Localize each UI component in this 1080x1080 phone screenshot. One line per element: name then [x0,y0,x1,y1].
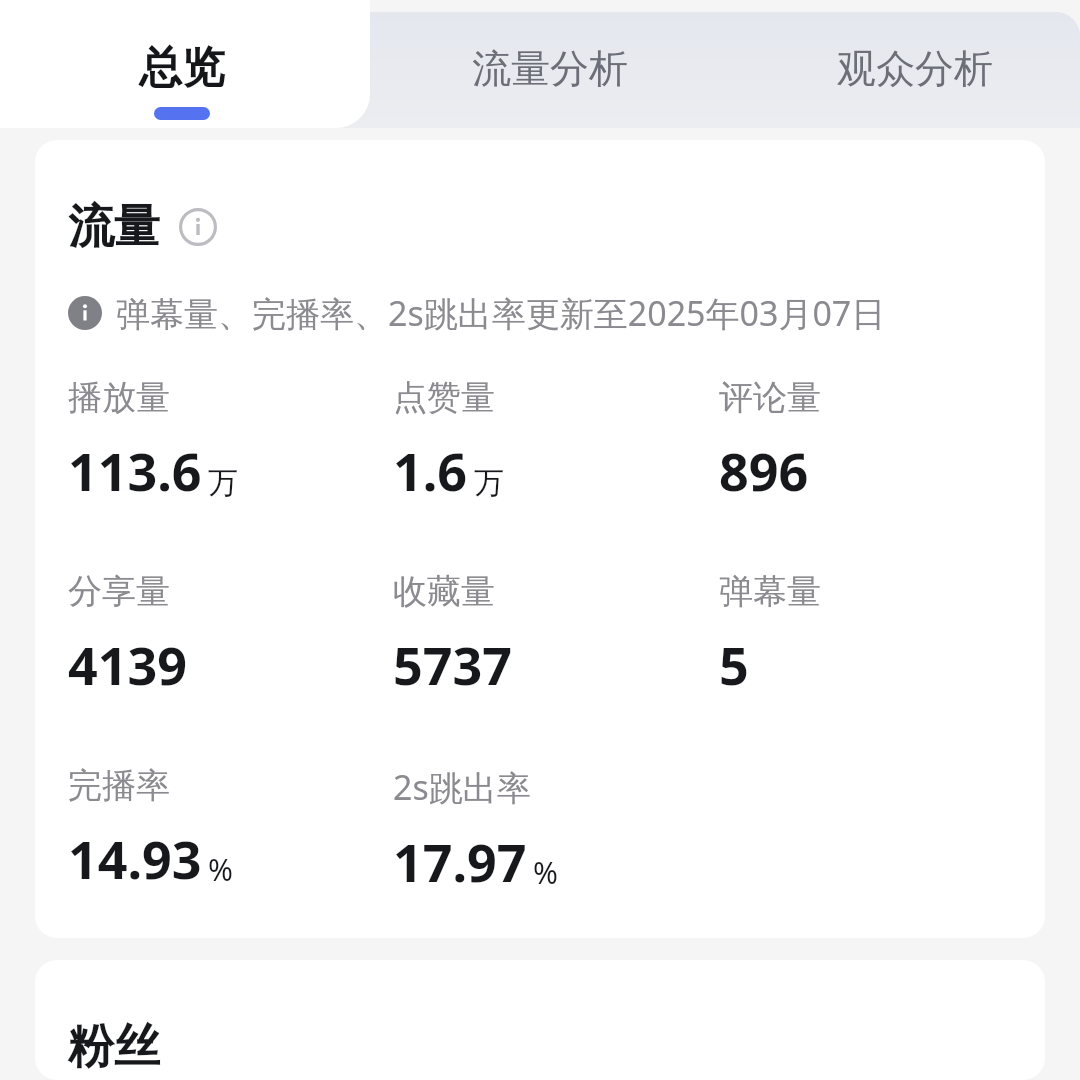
staticText: 观众分析 [837,44,993,93]
button[interactable]: 流量说明 [178,207,218,247]
button[interactable]: 弹幕量 [719,570,1045,700]
staticText: 播放量 [68,376,170,419]
staticText: 113.6 [68,435,202,506]
button[interactable]: 观众分析 [765,20,1065,116]
staticText: 总览 [139,41,225,95]
staticText: 流量 [68,198,160,256]
staticText: 14.93 [68,823,202,894]
staticText: 点赞量 [393,376,495,419]
staticText: 17.97 [393,826,527,897]
staticText: 流量分析 [472,44,628,93]
button[interactable]: 完播率 [68,764,393,894]
staticText: 万 [474,464,504,502]
staticText: 2s跳出率 [393,764,531,810]
button[interactable]: 总览 [62,0,302,128]
button[interactable]: 点赞量 [393,376,719,506]
button[interactable]: 收藏量 [393,570,719,700]
staticText: 4139 [68,629,187,700]
staticText: 收藏量 [393,570,495,613]
staticText: 万 [208,464,238,502]
staticText: % [208,849,233,890]
staticText: 评论量 [719,376,821,419]
staticText: 弹幕量 [719,570,821,613]
staticText: 分享量 [68,570,170,613]
button[interactable]: 评论量 [719,376,1045,506]
staticText: 1.6 [393,435,468,506]
staticText: 粉丝 [68,1018,160,1076]
button[interactable]: 分享量 [68,570,393,700]
staticText: 896 [719,435,809,506]
button[interactable]: 播放量 [68,376,393,506]
staticText: 5737 [393,629,512,700]
button[interactable]: 2s跳出率 [393,764,719,897]
staticText: 弹幕量、完播率、2s跳出率更新至2025年03月07日 [116,290,886,336]
button[interactable]: 流量分析 [400,20,700,116]
staticText: 完播率 [68,764,170,807]
staticText: % [533,852,558,893]
staticText: 5 [719,629,749,700]
